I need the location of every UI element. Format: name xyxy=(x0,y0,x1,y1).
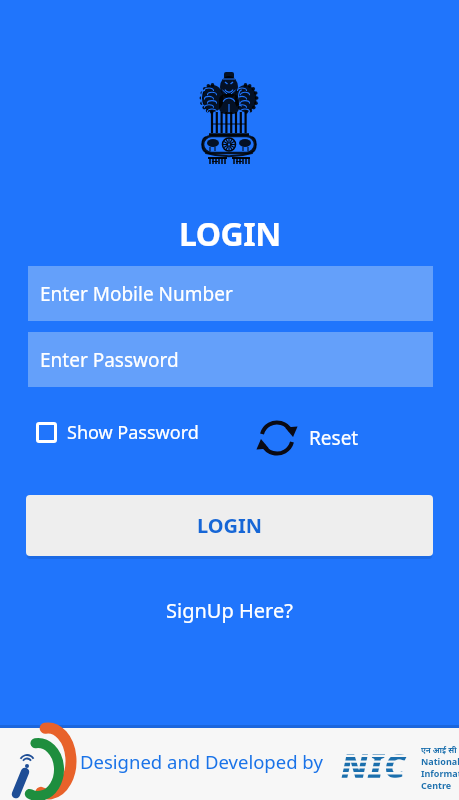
staticText: Enter Password xyxy=(40,347,179,373)
button[interactable]: LOGIN xyxy=(26,495,433,556)
staticText: NIC xyxy=(341,742,407,788)
staticText: एन आई सी xyxy=(421,744,457,755)
staticText: LOGIN xyxy=(179,212,281,256)
staticText: Designed and Developed by xyxy=(80,749,323,774)
staticText: Informatics xyxy=(421,767,459,779)
button[interactable]: SignUp Here? xyxy=(166,597,293,624)
button[interactable]: Enter Mobile Number xyxy=(28,266,433,321)
staticText: Centre xyxy=(421,779,452,791)
staticText: National xyxy=(421,755,459,767)
staticText: Enter Mobile Number xyxy=(40,281,233,307)
button[interactable]: Enter Password xyxy=(28,332,433,387)
button[interactable]: Reset xyxy=(257,418,359,458)
staticText: LOGIN xyxy=(197,512,263,539)
button[interactable]: Show Password xyxy=(36,420,199,445)
staticText: Reset xyxy=(309,425,359,451)
staticText: Show Password xyxy=(67,420,199,445)
staticText: SignUp Here? xyxy=(166,597,293,624)
